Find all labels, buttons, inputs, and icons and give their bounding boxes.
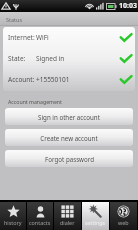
staticText: Internet: [8, 33, 35, 42]
staticText: Account: [8, 75, 35, 84]
button[interactable]: Forgot password [5, 150, 133, 167]
staticText: settings [85, 219, 106, 226]
staticText: Sign in other account [38, 113, 100, 121]
staticText: dialer [60, 219, 75, 226]
staticText: Create new account [40, 134, 98, 142]
staticText: Signed in [36, 54, 65, 63]
staticText: web [118, 219, 129, 226]
button[interactable]: settings [82, 202, 109, 230]
staticText: 10:03 [119, 1, 137, 11]
staticText: WiFi [36, 33, 49, 42]
staticText: State: [8, 54, 26, 63]
staticText: Account management [8, 98, 62, 105]
button[interactable]: dialer [54, 202, 81, 230]
staticText: Status [6, 16, 23, 23]
button[interactable]: web [110, 202, 137, 230]
button[interactable]: Create new account [5, 129, 133, 146]
staticText: history [4, 219, 22, 226]
button[interactable]: history [0, 202, 26, 230]
button[interactable]: contacts [27, 202, 53, 230]
staticText: +15550101 [36, 75, 70, 84]
staticText: contacts [29, 219, 51, 226]
button[interactable]: Sign in other account [5, 108, 133, 125]
staticText: Forgot password [45, 155, 94, 163]
